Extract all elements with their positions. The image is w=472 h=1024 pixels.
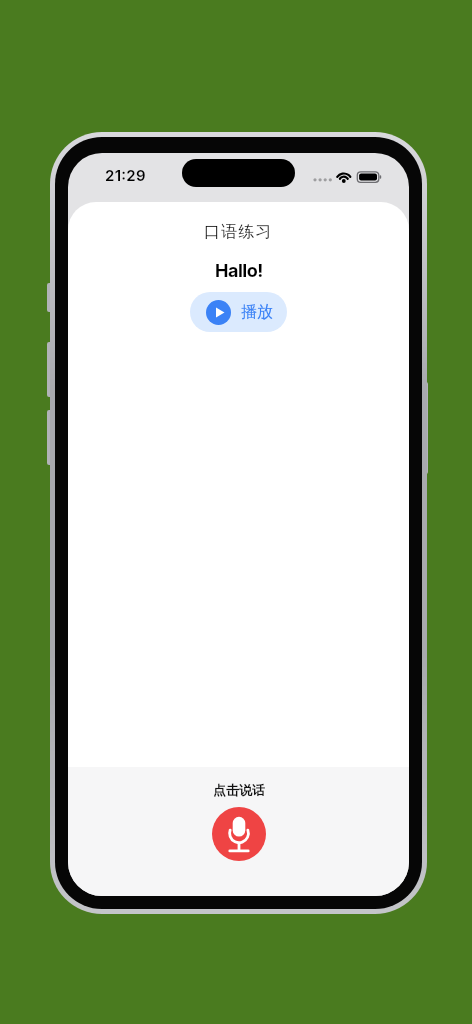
button[interactable] (212, 807, 266, 861)
button[interactable]: 播放 (190, 292, 287, 332)
staticText: 点击说话 (213, 782, 265, 798)
staticText: 口语练习 (204, 222, 273, 242)
staticText: 播放 (241, 302, 273, 322)
staticText: Hallo! (215, 260, 263, 282)
staticText: 21:29 (105, 166, 146, 184)
